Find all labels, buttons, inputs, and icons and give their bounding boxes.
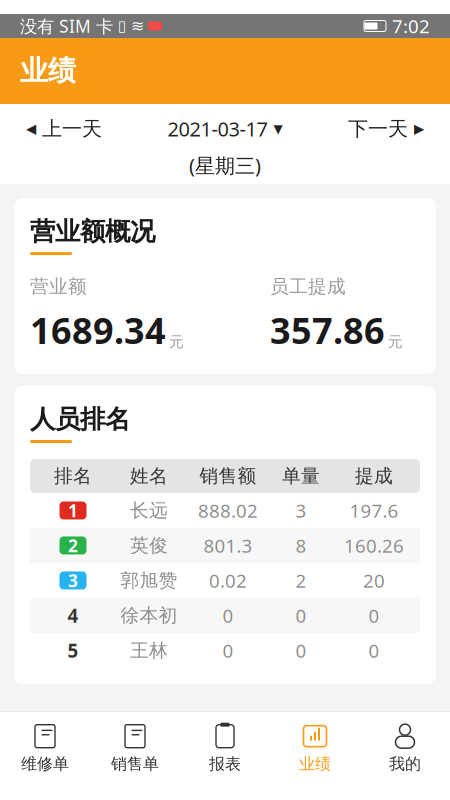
staticText: ▯ (113, 18, 131, 34)
staticText: 0 (368, 603, 379, 628)
staticText: 业绩 (20, 54, 76, 88)
button[interactable]: ◀ (18, 110, 110, 147)
staticText: 3 (68, 569, 78, 592)
staticText: 888.02 (198, 498, 258, 523)
staticText: 2 (68, 534, 78, 557)
staticText: 营业额 (30, 275, 87, 298)
staticText: 801.3 (203, 533, 252, 558)
staticText: 0 (222, 638, 233, 663)
staticText: 1 (68, 499, 78, 522)
staticText: ▶ (414, 121, 424, 136)
staticText: 7:02 (392, 14, 430, 38)
staticText: 3 (295, 498, 306, 523)
staticText: 2 (295, 568, 306, 593)
staticText: 徐本初 (120, 604, 177, 627)
staticText: 8 (295, 533, 306, 558)
staticText: 0 (368, 638, 379, 663)
staticText: 英俊 (130, 534, 168, 557)
staticText: 王林 (130, 639, 168, 662)
staticText: ≋ (131, 17, 144, 35)
staticText: 197.6 (349, 498, 398, 523)
staticText: 元 (169, 333, 184, 351)
staticText: 营业额概况 (30, 216, 155, 247)
button[interactable]: 报表 (180, 719, 270, 779)
staticText: 160.26 (344, 533, 404, 558)
staticText: 长远 (130, 499, 168, 522)
staticText: 20 (363, 568, 385, 593)
staticText: 销售单 (111, 754, 159, 774)
button[interactable]: 我的 (360, 719, 450, 779)
staticText: 357.86 (270, 306, 385, 354)
staticText: 元 (388, 333, 403, 351)
staticText: 我的 (389, 754, 421, 774)
staticText: 0.02 (209, 568, 247, 593)
staticText: 提成 (355, 464, 393, 487)
staticText: 下一天 (348, 116, 408, 141)
staticText: 报表 (209, 754, 241, 774)
staticText: 员工提成 (270, 275, 346, 298)
staticText: 郭旭赞 (120, 569, 177, 592)
button[interactable]: 下一天 (340, 110, 432, 147)
button[interactable]: 2021-03-17 (159, 109, 290, 148)
button[interactable]: 销售单 (90, 719, 180, 779)
button[interactable]: 维修单 (0, 719, 90, 779)
staticText: 上一天 (42, 116, 102, 141)
staticText: 单量 (282, 464, 320, 487)
staticText: 0 (295, 603, 306, 628)
button[interactable]: 业绩 (270, 719, 360, 779)
staticText: 0 (295, 638, 306, 663)
staticText: 维修单 (21, 754, 69, 774)
staticText: (星期三) (189, 152, 261, 179)
staticText: 排名 (54, 464, 92, 487)
staticText: 2021-03-17 (167, 115, 267, 142)
staticText: 0 (222, 603, 233, 628)
staticText: 没有 SIM 卡 (20, 14, 113, 37)
staticText: 业绩 (299, 754, 331, 774)
staticText: 1689.34 (30, 306, 166, 354)
staticText: ▼ (273, 122, 282, 135)
staticText: 销售额 (199, 464, 256, 487)
staticText: 姓名 (130, 464, 168, 487)
staticText: 5 (67, 638, 78, 663)
staticText: 4 (67, 603, 78, 628)
staticText: 人员排名 (30, 404, 130, 435)
staticText: ◀ (26, 121, 36, 136)
